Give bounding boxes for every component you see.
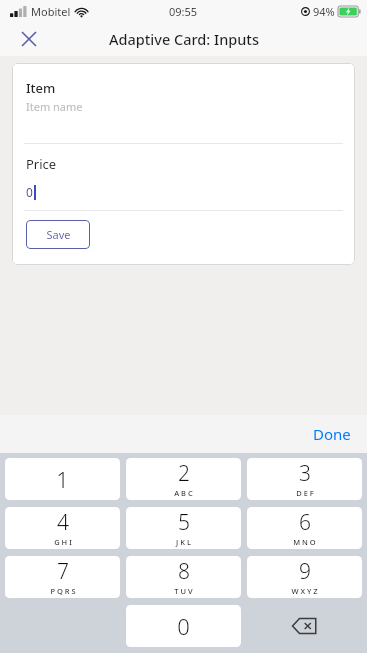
staticText: 0 (177, 611, 190, 641)
staticText: A B C (174, 488, 193, 498)
button[interactable]: 0 (126, 605, 241, 647)
staticText: P Q R S (50, 586, 76, 596)
staticText: Item name (26, 99, 83, 114)
button[interactable]: Item name (12, 99, 355, 143)
staticText: G H I (54, 537, 72, 547)
button[interactable]: 9 (247, 556, 362, 598)
button[interactable]: 7 (5, 556, 120, 598)
staticText: 2 (178, 459, 190, 488)
staticText: 3 (299, 459, 311, 488)
staticText: J K L (176, 537, 191, 547)
button[interactable]: Close (12, 22, 46, 56)
staticText: M N O (293, 537, 316, 547)
button[interactable]: 6 (247, 507, 362, 549)
button[interactable]: Backspace (247, 605, 362, 647)
staticText: 09:55 (169, 4, 198, 19)
staticText: 0 (26, 184, 33, 200)
staticText: 8 (178, 557, 190, 586)
staticText: D E F (296, 488, 314, 498)
button[interactable]: Done (305, 418, 359, 450)
staticText: W X Y Z (291, 586, 318, 596)
staticText: Adaptive Card: Inputs (109, 29, 259, 49)
button[interactable]: 1 (5, 458, 120, 500)
button[interactable]: Save (26, 220, 90, 249)
button[interactable]: 2 (126, 458, 241, 500)
staticText: Mobitel (31, 4, 71, 19)
button[interactable]: 0 (12, 184, 355, 206)
staticText: T U V (174, 586, 193, 596)
staticText: Item (26, 79, 56, 97)
staticText: 1 (56, 464, 69, 494)
button[interactable]: 3 (247, 458, 362, 500)
staticText: 4 (57, 508, 69, 537)
staticText: Price (26, 155, 57, 173)
staticText: 6 (299, 508, 311, 537)
staticText: 5 (178, 508, 190, 537)
staticText: Done (313, 424, 351, 444)
staticText: 94% (313, 4, 335, 19)
button[interactable]: 5 (126, 507, 241, 549)
button[interactable]: 4 (5, 507, 120, 549)
staticText: Save (46, 227, 71, 242)
staticText: 9 (299, 557, 311, 586)
staticText: 7 (57, 557, 69, 586)
button[interactable]: 8 (126, 556, 241, 598)
